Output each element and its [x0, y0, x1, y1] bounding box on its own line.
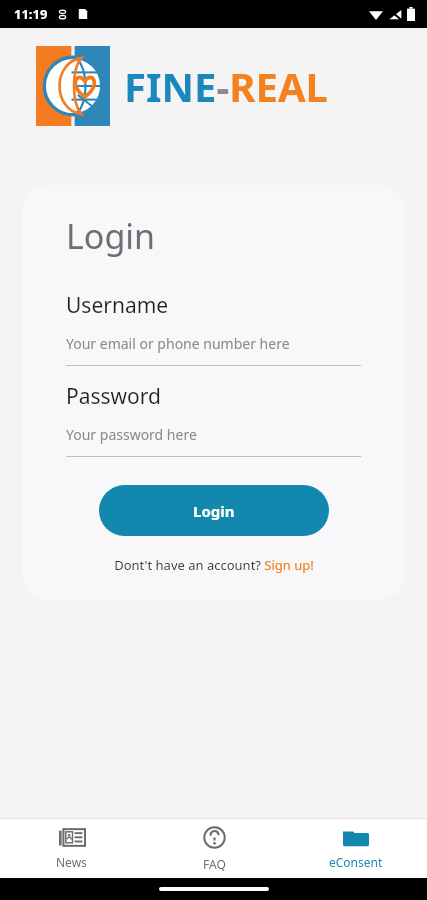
staticText: Your email or phone number here [66, 334, 290, 353]
staticText: FAQ [203, 856, 226, 872]
button[interactable]: Password [66, 382, 361, 457]
staticText: Dont't have an account? Sign up! [114, 556, 314, 574]
button[interactable]: Username [66, 291, 361, 366]
staticText: Password [66, 382, 161, 411]
button[interactable]: Dont't have an account? Sign up! [114, 556, 314, 574]
button[interactable]: News [0, 819, 143, 878]
staticText: FINE-REAL [124, 59, 328, 113]
button[interactable]: Login [99, 485, 329, 536]
button[interactable]: eConsent [285, 819, 427, 878]
staticText: eConsent [329, 854, 383, 870]
staticText: News [56, 854, 87, 870]
staticText: Username [66, 291, 169, 320]
staticText: Login [193, 501, 235, 521]
button[interactable]: FAQ [143, 819, 285, 878]
staticText: 11:19 [14, 5, 48, 23]
staticText: Your password here [66, 425, 197, 444]
staticText: Login [66, 213, 156, 259]
